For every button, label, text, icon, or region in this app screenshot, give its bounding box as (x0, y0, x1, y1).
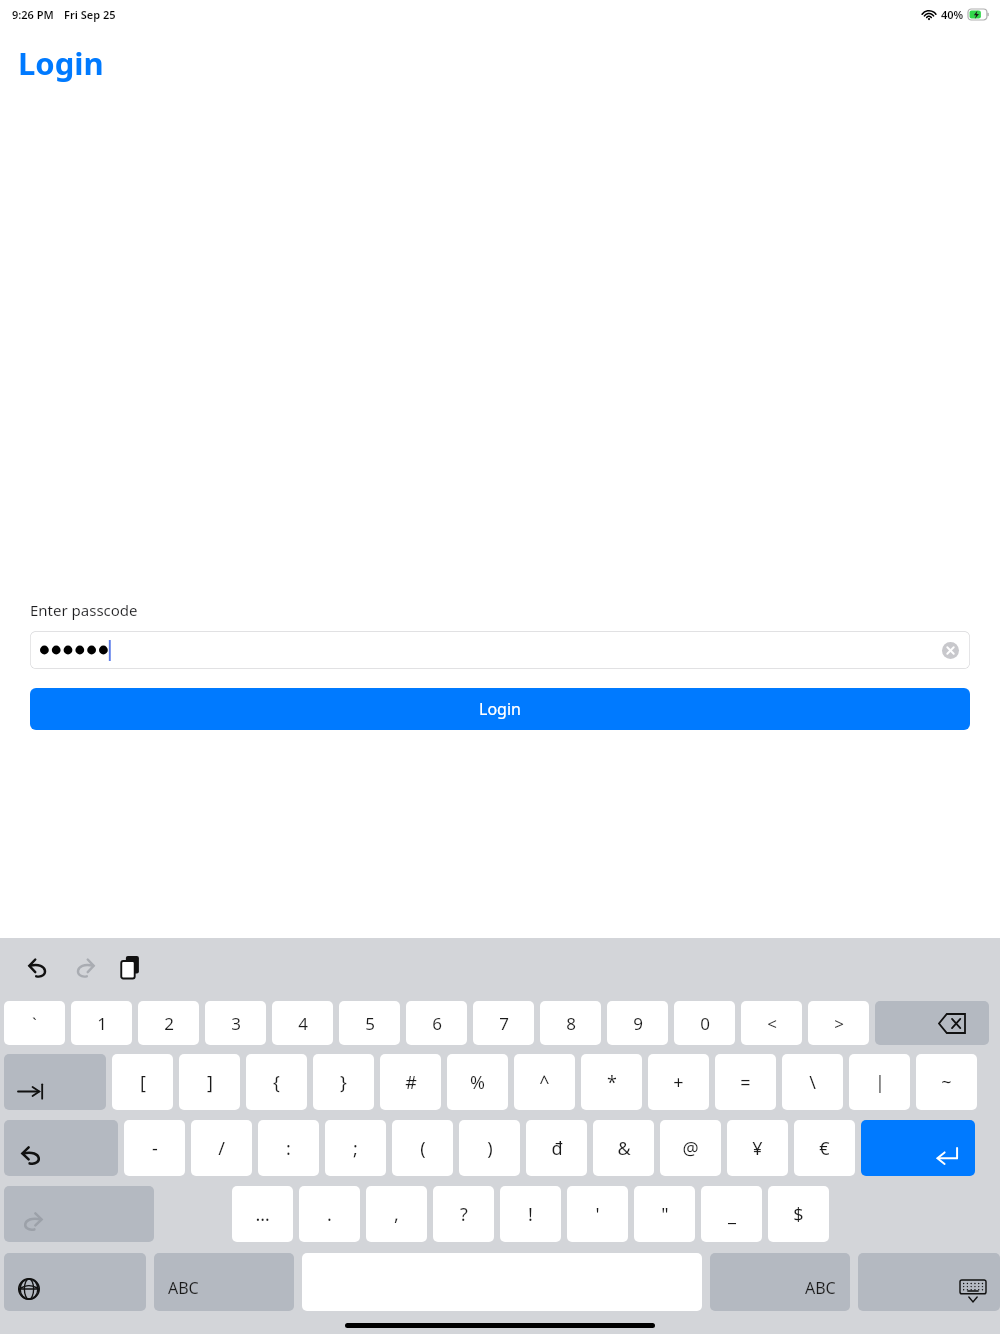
button[interactable]: . (299, 1186, 360, 1242)
button[interactable]: ! (500, 1186, 561, 1242)
staticText: ^ (539, 1070, 550, 1095)
button[interactable]: - (124, 1120, 185, 1176)
button[interactable]: & (593, 1120, 654, 1176)
button[interactable]: Clear text (30, 631, 970, 669)
staticText: ABC (168, 1277, 199, 1299)
staticText: _ (728, 1202, 736, 1227)
button[interactable]: _ (701, 1186, 762, 1242)
button[interactable]: ^ (514, 1054, 575, 1110)
button[interactable]: : (258, 1120, 319, 1176)
button[interactable]: Next keyboard (4, 1253, 146, 1311)
button[interactable]: 9 (607, 1001, 668, 1045)
button[interactable]: % (447, 1054, 508, 1110)
button[interactable]: 6 (406, 1001, 467, 1045)
staticText: 9:26 PM (12, 7, 54, 22)
button[interactable]: 7 (473, 1001, 534, 1045)
button[interactable]: ~ (916, 1054, 977, 1110)
button[interactable]: / (191, 1120, 252, 1176)
button[interactable]: } (313, 1054, 374, 1110)
button[interactable]: € (794, 1120, 855, 1176)
button[interactable]: Paste (112, 949, 148, 985)
button[interactable]: Hide keyboard (858, 1253, 1000, 1311)
button[interactable]: { (246, 1054, 307, 1110)
button[interactable]: … (232, 1186, 293, 1242)
button[interactable]: 1 (71, 1001, 132, 1045)
button[interactable]: Backspace (875, 1001, 989, 1045)
button[interactable]: + (648, 1054, 709, 1110)
button[interactable]: 5 (339, 1001, 400, 1045)
button[interactable]: > (808, 1001, 869, 1045)
button[interactable]: đ (526, 1120, 587, 1176)
staticText: Enter passcode (30, 600, 138, 620)
button[interactable]: ( (392, 1120, 453, 1176)
button[interactable]: = (715, 1054, 776, 1110)
button[interactable]: ` (4, 1001, 65, 1045)
button[interactable]: 4 (272, 1001, 333, 1045)
button[interactable]: @ (660, 1120, 721, 1176)
button[interactable]: ] (179, 1054, 240, 1110)
staticText: @ (682, 1136, 699, 1161)
button[interactable]: ; (325, 1120, 386, 1176)
button[interactable]: Login (30, 688, 970, 730)
button[interactable]: " (634, 1186, 695, 1242)
staticText: * (607, 1070, 617, 1095)
staticText: 1 (97, 1012, 107, 1035)
staticText: $ (793, 1202, 804, 1227)
staticText: 2 (164, 1012, 174, 1035)
staticText: ! (528, 1202, 533, 1227)
button[interactable]: Redo (66, 949, 102, 985)
button[interactable]: \ (782, 1054, 843, 1110)
button[interactable]: 2 (138, 1001, 199, 1045)
button[interactable]: 8 (540, 1001, 601, 1045)
button[interactable]: ) (459, 1120, 520, 1176)
staticText: Fri Sep 25 (64, 7, 116, 22)
button[interactable]: Shift (4, 1120, 118, 1176)
staticText: € (819, 1136, 830, 1161)
button[interactable]: ¥ (727, 1120, 788, 1176)
staticText: 40% (941, 7, 964, 22)
staticText: 4 (298, 1012, 308, 1035)
staticText: ' (595, 1202, 600, 1227)
staticText: { (273, 1070, 280, 1095)
button[interactable]: ? (433, 1186, 494, 1242)
button[interactable]: Tab (4, 1054, 106, 1110)
staticText: 8 (566, 1012, 576, 1035)
button[interactable]: Clear text (938, 638, 962, 662)
staticText: 6 (432, 1012, 442, 1035)
staticText: : (286, 1136, 291, 1161)
staticText: } (340, 1070, 347, 1095)
staticText: [ (140, 1070, 146, 1095)
button[interactable]: < (741, 1001, 802, 1045)
button[interactable]: 3 (205, 1001, 266, 1045)
button[interactable]: * (581, 1054, 642, 1110)
button[interactable]: 0 (674, 1001, 735, 1045)
staticText: . (327, 1202, 332, 1227)
staticText: & (617, 1136, 631, 1161)
staticText: 0 (700, 1012, 710, 1035)
staticText: + (673, 1070, 684, 1095)
button[interactable]: Redo key (4, 1186, 154, 1242)
staticText: ? (460, 1202, 468, 1227)
button[interactable]: # (380, 1054, 441, 1110)
button[interactable]: Undo (20, 949, 56, 985)
button[interactable]: , (366, 1186, 427, 1242)
staticText: , (394, 1202, 399, 1227)
staticText: ` (32, 1012, 37, 1035)
staticText: ¥ (752, 1136, 763, 1161)
button[interactable]: ABC (154, 1253, 294, 1311)
button[interactable]: ABC (710, 1253, 850, 1311)
staticText: \ (809, 1070, 816, 1095)
button[interactable]: $ (768, 1186, 829, 1242)
staticText: / (218, 1136, 225, 1161)
staticText: % (470, 1070, 485, 1095)
staticText: > (834, 1012, 844, 1035)
button[interactable]: | (849, 1054, 910, 1110)
button[interactable]: Return (861, 1120, 975, 1176)
staticText: 9 (633, 1012, 643, 1035)
staticText: # (405, 1070, 417, 1095)
staticText: 3 (231, 1012, 241, 1035)
staticText: - (152, 1136, 158, 1161)
button[interactable]: ' (567, 1186, 628, 1242)
button[interactable]: [ (112, 1054, 173, 1110)
